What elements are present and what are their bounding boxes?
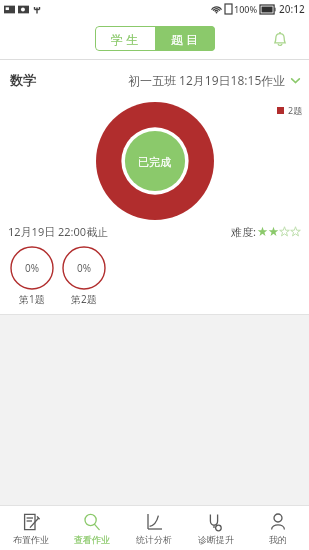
staticText: 12月19日 22:00截止: [8, 224, 109, 239]
staticText: 已完成: [138, 155, 171, 169]
button[interactable]: 学 生: [95, 26, 155, 51]
staticText: 诊断提升: [198, 534, 234, 545]
button[interactable]: 布置作业: [0, 506, 61, 550]
staticText: 2题: [288, 104, 303, 116]
button[interactable]: 统计分析: [123, 506, 185, 550]
staticText: 布置作业: [13, 534, 49, 545]
staticText: 我的: [269, 534, 287, 545]
button[interactable]: 我的: [247, 506, 309, 550]
staticText: 查看作业: [74, 534, 110, 545]
staticText: 20:12: [279, 2, 305, 16]
staticText: 0%: [77, 261, 92, 275]
button[interactable]: 初一五班 12月19日18:15作业: [128, 72, 301, 88]
staticText: 难度:: [231, 224, 256, 239]
button[interactable]: 题 目: [155, 26, 215, 51]
staticText: 第1题: [19, 292, 45, 306]
staticText: 0%: [25, 261, 40, 275]
staticText: 统计分析: [136, 534, 172, 545]
button[interactable]: 0%: [62, 246, 106, 306]
staticText: 第2题: [71, 292, 97, 306]
button[interactable]: 查看作业: [61, 506, 123, 550]
staticText: 初一五班 12月19日18:15作业: [128, 72, 286, 88]
staticText: 学 生: [111, 31, 139, 47]
staticText: 100%: [234, 3, 258, 15]
staticText: 数学: [10, 72, 36, 88]
button[interactable]: Notifications: [265, 24, 295, 54]
staticText: 题 目: [171, 31, 199, 47]
button[interactable]: 0%: [10, 246, 54, 306]
button[interactable]: 诊断提升: [185, 506, 247, 550]
